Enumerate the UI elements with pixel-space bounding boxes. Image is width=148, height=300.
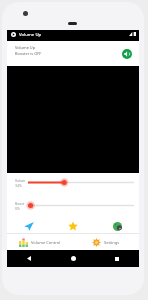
staticText: Booster is OFF — [15, 51, 42, 56]
button[interactable]: Rate — [51, 219, 95, 233]
staticText: Volume Up — [15, 45, 36, 50]
button[interactable]: Volume — [7, 173, 139, 192]
button[interactable]: Volume Control — [7, 234, 73, 250]
button[interactable]: More apps — [95, 219, 139, 233]
staticText: 0% — [15, 206, 20, 211]
button[interactable]: Back — [7, 250, 51, 267]
staticText: Boost — [15, 201, 25, 206]
button[interactable]: Share — [7, 219, 51, 233]
staticText: 34% — [15, 183, 22, 188]
staticText: Volume — [15, 178, 26, 183]
staticText: Volume Up — [19, 31, 42, 37]
button[interactable]: Recents — [95, 250, 139, 267]
staticText: Settings — [104, 240, 120, 245]
button[interactable]: Home — [51, 250, 95, 267]
button[interactable]: Settings — [73, 234, 139, 250]
button[interactable]: Volume Up — [7, 41, 139, 66]
button[interactable]: Boost — [7, 192, 139, 219]
staticText: Volume Control — [31, 240, 61, 245]
other: Toggle booster — [122, 49, 132, 59]
